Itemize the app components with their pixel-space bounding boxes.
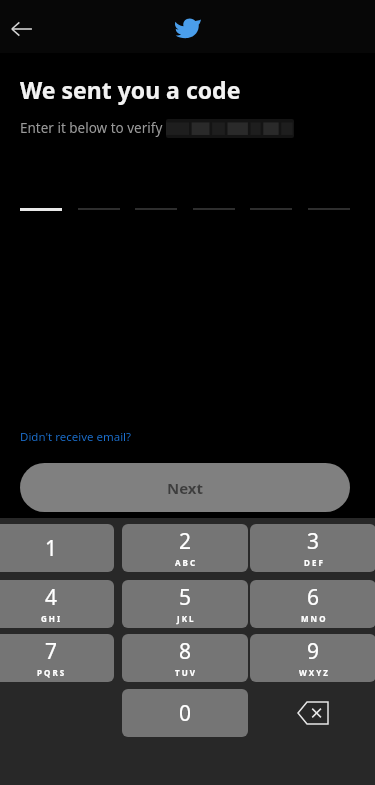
button[interactable]: 9 [250,634,375,682]
staticText: 0 [179,699,192,728]
staticText: P Q R S [37,667,65,678]
staticText: A B C [175,557,196,568]
staticText: Enter it below to verify [20,119,166,137]
staticText: 4 [45,583,58,612]
button[interactable]: Backspace [250,689,375,737]
button[interactable]: Next [20,463,350,512]
staticText: G H I [41,613,61,624]
button[interactable]: Didn't receive email? [14,427,138,447]
staticText: D E F [304,557,323,568]
staticText: 3 [307,527,320,556]
button[interactable]: 2 [122,524,248,572]
staticText: Didn't receive email? [20,429,132,445]
button[interactable]: Back [0,14,44,44]
staticText: 9 [307,637,320,666]
button[interactable]: 7 [0,634,114,682]
button[interactable]: 6 [250,580,375,628]
staticText: Next [167,478,204,498]
button[interactable]: 4 [0,580,114,628]
staticText: 6 [307,583,320,612]
staticText: T U V [175,667,196,678]
staticText: M N O [301,613,326,624]
staticText: 5 [179,583,192,612]
staticText: 1 [45,534,58,563]
staticText: 7 [45,637,58,666]
button[interactable]: 5 [122,580,248,628]
button[interactable]: 1 [0,524,114,572]
staticText: J K L [177,613,194,624]
button[interactable]: 3 [250,524,375,572]
staticText: 2 [179,527,192,556]
button[interactable]: 8 [122,634,248,682]
staticText: 8 [179,637,192,666]
staticText: W X Y Z [299,667,328,678]
button[interactable]: 0 [122,689,248,737]
staticText: We sent you a code [20,74,241,105]
